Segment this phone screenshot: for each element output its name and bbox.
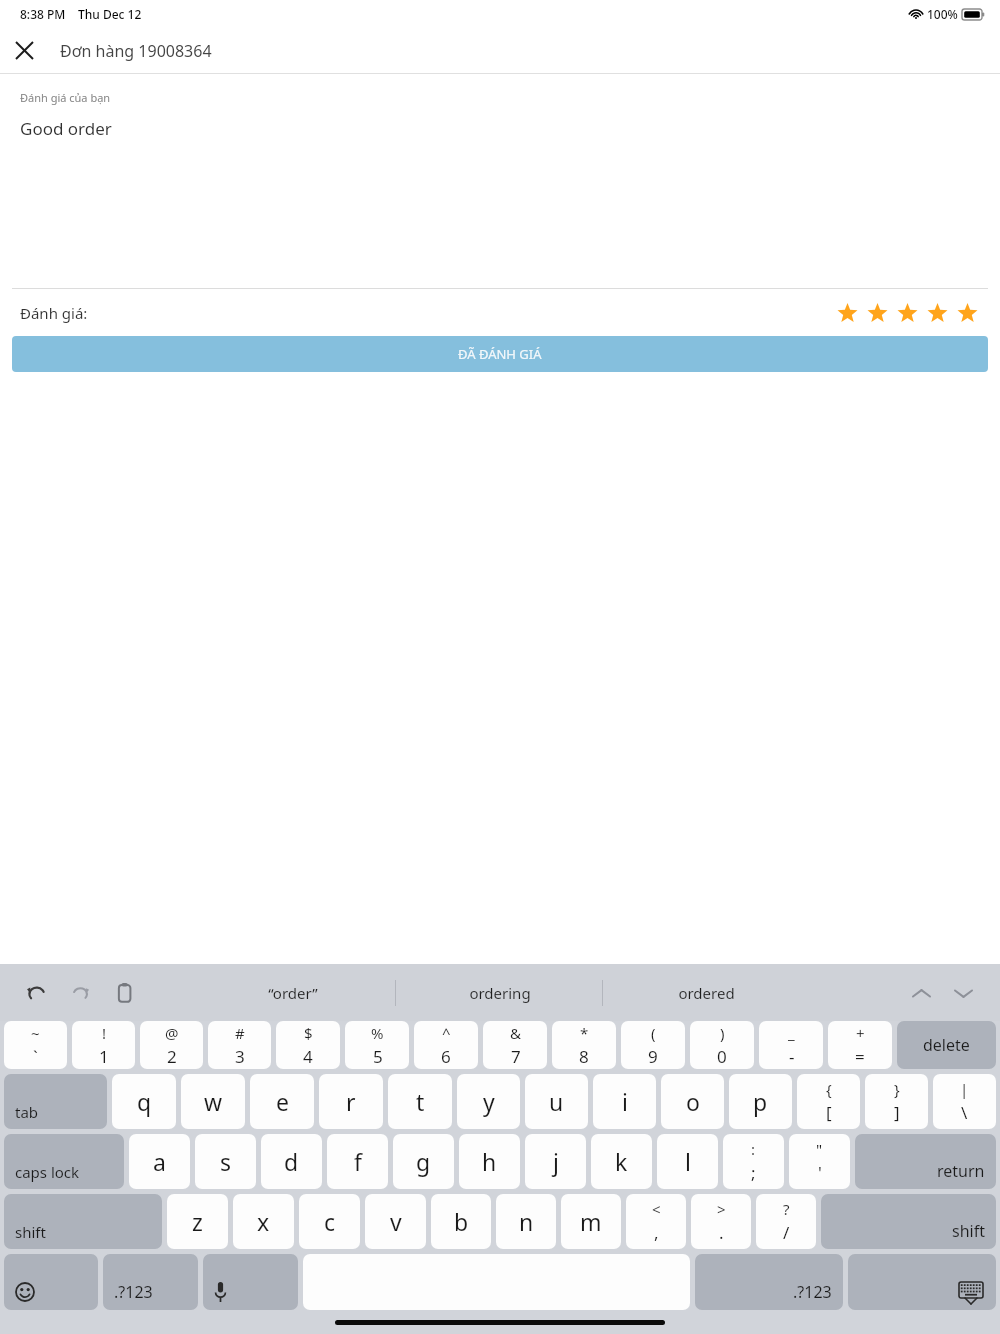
staticText: + [856,1023,865,1043]
button[interactable]: .?123 [103,1254,198,1310]
staticText: e [276,1086,289,1117]
button[interactable]: j [525,1134,586,1189]
staticText: o [686,1086,700,1117]
button[interactable]: b [431,1194,491,1249]
button[interactable]: delete [897,1021,996,1069]
button[interactable]: return [855,1134,996,1189]
staticText: ' [818,1161,822,1184]
button[interactable]: % [345,1021,409,1069]
button[interactable]: g [393,1134,454,1189]
button[interactable]: ( [621,1021,685,1069]
button[interactable]: q [112,1074,176,1129]
button[interactable]: ordered [603,964,810,1021]
button[interactable]: u [525,1074,588,1129]
button[interactable]: a [129,1134,190,1189]
button[interactable]: Undo [16,973,56,1013]
button[interactable]: m [561,1194,621,1249]
button[interactable]: Star 4 [922,298,952,328]
button[interactable]: “order” [190,964,396,1021]
staticText: ] [894,1101,900,1124]
staticText: .?123 [114,1281,153,1303]
button[interactable]: { [797,1074,860,1129]
staticText: Good order [20,117,112,140]
button[interactable]: Star 2 [862,298,892,328]
button[interactable]: x [233,1194,294,1249]
button[interactable]: " [789,1134,850,1189]
button[interactable]: Redo [60,973,100,1013]
button[interactable]: shift [821,1194,996,1249]
staticText: l [685,1146,691,1177]
button[interactable]: ĐÃ ĐÁNH GIÁ [12,336,988,372]
button[interactable]: e [250,1074,314,1129]
staticText: " [816,1139,823,1159]
button[interactable]: .?123 [695,1254,843,1310]
button[interactable]: > [691,1194,751,1249]
button[interactable]: ! [72,1021,135,1069]
staticText: 3 [235,1045,245,1068]
staticText: % [371,1023,384,1043]
button[interactable] [203,1254,298,1310]
button[interactable]: p [729,1074,792,1129]
button[interactable]: v [365,1194,426,1249]
button[interactable]: Paste [104,973,144,1013]
button[interactable]: Close [0,28,48,73]
button[interactable]: } [865,1074,928,1129]
button[interactable]: Star 1 [832,298,862,328]
button[interactable]: | [933,1074,996,1129]
staticText: 2 [167,1045,177,1068]
staticText: ( [651,1023,656,1043]
button[interactable]: d [261,1134,322,1189]
button[interactable]: caps lock [4,1134,124,1189]
button[interactable]: Star 3 [892,298,922,328]
button[interactable]: # [208,1021,271,1069]
button[interactable]: n [496,1194,556,1249]
staticText: return [937,1160,985,1182]
button[interactable] [848,1254,996,1310]
staticText: 4 [303,1045,313,1068]
button[interactable]: @ [140,1021,203,1069]
button[interactable]: & [483,1021,547,1069]
button[interactable]: w [181,1074,245,1129]
button[interactable]: y [457,1074,520,1129]
staticText: ? [783,1199,790,1219]
button[interactable]: Previous [900,972,942,1014]
button[interactable]: + [828,1021,892,1069]
button[interactable]: $ [276,1021,340,1069]
staticText: Thu Dec 12 [78,6,142,22]
staticText: Đánh giá: [20,303,88,323]
staticText: Đơn hàng 19008364 [60,40,212,62]
staticText: 9 [648,1045,658,1068]
button[interactable]: r [319,1074,383,1129]
button[interactable]: < [626,1194,686,1249]
button[interactable]: i [593,1074,656,1129]
staticText: ! [102,1023,107,1043]
button[interactable]: ^ [414,1021,478,1069]
button[interactable]: : [723,1134,784,1189]
button[interactable]: shift [4,1194,162,1249]
button[interactable]: _ [759,1021,823,1069]
button[interactable]: c [299,1194,360,1249]
button[interactable]: ordering [396,964,603,1021]
button[interactable]: s [195,1134,256,1189]
button[interactable]: ~ [4,1021,67,1069]
staticText: ĐÃ ĐÁNH GIÁ [458,345,542,363]
staticText: \ [961,1101,968,1124]
button[interactable]: k [591,1134,652,1189]
button[interactable]: * [552,1021,616,1069]
button[interactable]: ) [690,1021,754,1069]
button[interactable]: z [167,1194,228,1249]
button[interactable]: o [661,1074,724,1129]
button[interactable]: t [388,1074,452,1129]
staticText: h [482,1146,497,1177]
staticText: . [719,1221,724,1244]
button[interactable]: h [459,1134,520,1189]
button[interactable]: ? [756,1194,816,1249]
button[interactable]: Star 5 [952,298,982,328]
button[interactable] [4,1254,98,1310]
button[interactable]: l [657,1134,718,1189]
staticText: k [615,1146,628,1177]
button[interactable]: Next [942,972,984,1014]
button[interactable]: tab [4,1074,107,1129]
button[interactable]: f [327,1134,388,1189]
